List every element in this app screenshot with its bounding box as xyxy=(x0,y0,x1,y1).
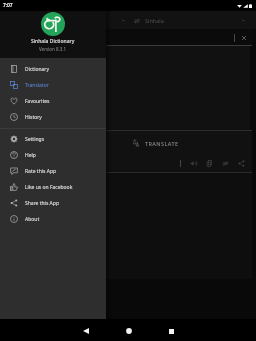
staticText: TRANSLATE xyxy=(145,140,179,147)
button[interactable]: Like us on Facebook xyxy=(0,179,106,195)
staticText: Dictionary xyxy=(25,66,49,73)
button[interactable]: Back xyxy=(64,320,107,341)
staticText: Version 8.3.1 xyxy=(39,46,67,52)
button[interactable]: Swap languages xyxy=(134,17,164,24)
staticText: About xyxy=(25,216,40,223)
staticText: 7:07 xyxy=(3,2,13,9)
button[interactable]: Copy xyxy=(206,160,213,167)
button[interactable]: Dictionary xyxy=(0,61,106,77)
staticText: Help xyxy=(25,152,36,159)
staticText: Favourites xyxy=(25,98,50,105)
button[interactable]: Home xyxy=(107,320,150,341)
staticText: Sinhala xyxy=(145,17,164,24)
button[interactable]: Hide xyxy=(222,160,229,167)
button[interactable]: Favourites xyxy=(0,93,106,109)
button[interactable]: Clear xyxy=(240,34,248,42)
button[interactable]: Translator xyxy=(0,77,106,93)
staticText: Like us on Facebook xyxy=(25,184,73,191)
staticText: Rate this App xyxy=(25,168,57,175)
staticText: History xyxy=(25,114,42,121)
staticText: Share this App xyxy=(25,200,59,207)
button[interactable]: Share xyxy=(238,160,245,167)
button[interactable]: Speak xyxy=(190,160,197,167)
staticText: Translator xyxy=(25,82,49,89)
other: Swap languages xyxy=(134,18,140,24)
button[interactable]: Help xyxy=(0,147,106,163)
button[interactable]: Settings xyxy=(0,131,106,147)
button[interactable]: Recent apps xyxy=(150,320,193,341)
button[interactable]: TRANSLATE xyxy=(133,139,179,147)
button[interactable]: Share this App xyxy=(0,195,106,211)
staticText: Sinhala Dictionary xyxy=(31,38,75,45)
button[interactable]: Rate this App xyxy=(0,163,106,179)
button[interactable]: About xyxy=(0,211,106,227)
button[interactable]: English xyxy=(88,17,126,24)
button[interactable]: History xyxy=(0,109,106,125)
staticText: Settings xyxy=(25,136,45,143)
